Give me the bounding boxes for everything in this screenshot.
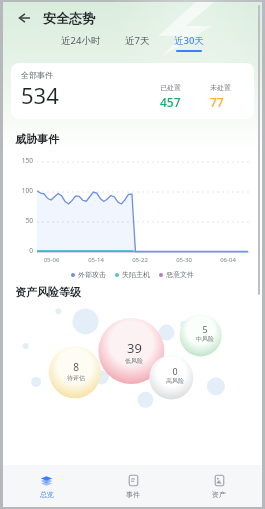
staticText: 近24小时	[61, 34, 101, 47]
staticText: 近30天	[174, 34, 204, 47]
staticText: 资产	[212, 490, 226, 499]
button[interactable]: 总览	[3, 465, 90, 507]
staticText: 低风险	[125, 357, 143, 365]
staticText: 威胁事件	[15, 132, 59, 146]
staticText: 05-22	[118, 256, 162, 264]
button[interactable]: Back	[12, 6, 36, 30]
staticText: 100	[15, 186, 33, 195]
button[interactable]: 近7天	[123, 34, 152, 52]
button[interactable]: 资产	[176, 465, 262, 507]
staticText: 0	[172, 365, 178, 377]
staticText: 150	[15, 156, 33, 165]
staticText: 失陷主机	[122, 270, 150, 279]
staticText: 外部攻击	[78, 270, 106, 279]
button[interactable]: 近30天	[172, 34, 206, 52]
staticText: 05-30	[162, 256, 206, 264]
button[interactable]: 事件	[90, 465, 176, 507]
staticText: 8	[73, 360, 79, 374]
staticText: 0	[15, 246, 33, 255]
staticText: 总览	[40, 490, 54, 499]
staticText: 待评估	[67, 374, 85, 382]
staticText: 中风险	[196, 335, 214, 343]
staticText: 未处置	[210, 83, 231, 92]
staticText: 05-06	[29, 256, 74, 264]
staticText: 457	[160, 94, 181, 110]
staticText: 恶意文件	[166, 270, 194, 279]
staticText: 50	[15, 216, 33, 225]
staticText: 资产风险等级	[15, 285, 81, 299]
staticText: 近7天	[125, 34, 150, 47]
staticText: 全部事件	[21, 70, 53, 80]
staticText: 高风险	[166, 377, 184, 385]
staticText: 06-04	[206, 256, 250, 264]
staticText: 534	[21, 80, 59, 110]
staticText: 已处置	[160, 83, 181, 92]
button[interactable]: 全部事件	[11, 63, 254, 119]
staticText: 39	[127, 339, 142, 357]
staticText: 5	[202, 323, 208, 335]
staticText: 77	[210, 94, 224, 110]
staticText: 事件	[126, 490, 140, 499]
staticText: 安全态势	[43, 10, 95, 26]
button[interactable]: 近24小时	[59, 34, 103, 52]
staticText: 05-14	[74, 256, 118, 264]
